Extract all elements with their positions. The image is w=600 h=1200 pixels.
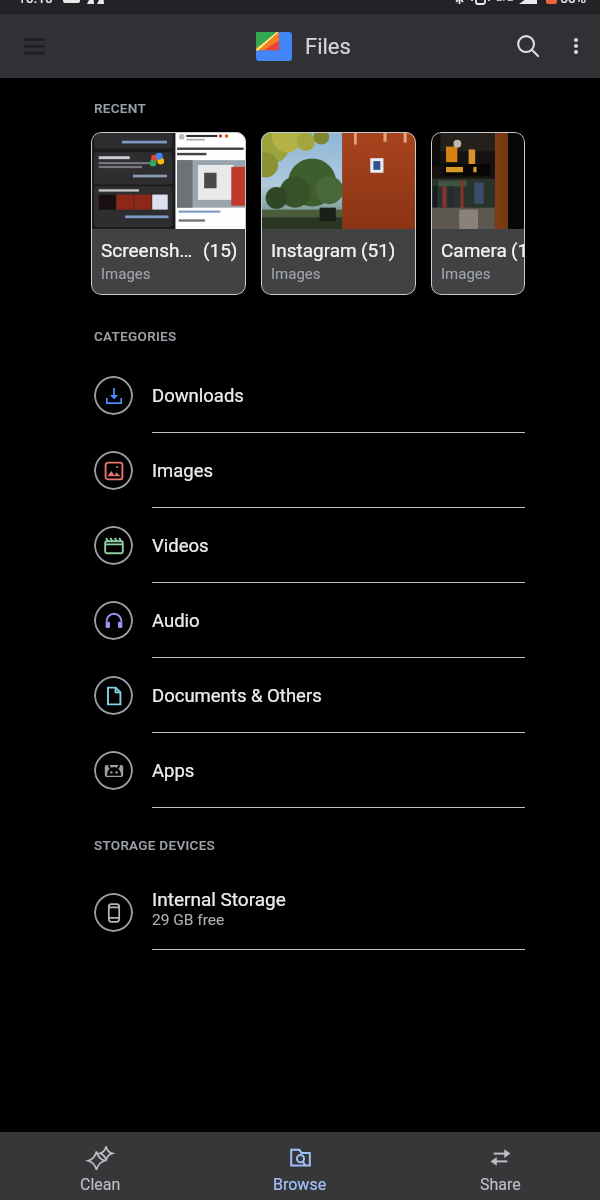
staticText: 10:10 — [18, 0, 53, 4]
staticText: Downloads — [152, 385, 244, 407]
button[interactable]: Instagram — [261, 132, 416, 295]
staticText: Browse — [273, 1175, 327, 1194]
button[interactable]: Screensh… — [91, 132, 246, 295]
staticText: Images — [101, 265, 151, 283]
button[interactable]: Menu — [12, 24, 56, 68]
staticText: Images — [152, 460, 214, 482]
staticText: Videos — [152, 535, 209, 557]
button[interactable]: Apps — [0, 733, 600, 808]
button[interactable]: Camera — [431, 132, 525, 295]
staticText: Instagram — [271, 239, 357, 261]
staticText: Apps — [152, 760, 195, 782]
staticText: Internal Storage — [152, 888, 286, 910]
staticText: CATEGORIES — [94, 328, 177, 344]
staticText: LTE — [496, 0, 514, 4]
staticText: Audio — [152, 610, 200, 632]
staticText: RECENT — [94, 100, 146, 116]
button[interactable]: Internal Storage — [0, 875, 600, 950]
button[interactable]: Downloads — [0, 358, 600, 433]
button[interactable]: More options — [552, 22, 600, 70]
staticText: STORAGE DEVICES — [94, 837, 216, 853]
staticText: 56% — [560, 0, 586, 4]
staticText: Clean — [80, 1175, 121, 1194]
staticText: (51) — [361, 239, 396, 261]
staticText: Documents & Others — [152, 685, 322, 707]
staticText: Share — [480, 1175, 521, 1194]
button[interactable]: Clean — [0, 1139, 200, 1194]
button[interactable]: Videos — [0, 508, 600, 583]
staticText: (15) — [203, 239, 238, 261]
staticText: Camera — [441, 239, 507, 261]
staticText: Images — [271, 265, 321, 283]
button[interactable]: Documents & Others — [0, 658, 600, 733]
button[interactable]: Share — [400, 1139, 600, 1194]
button[interactable]: Browse — [200, 1139, 400, 1194]
staticText: (14) — [511, 239, 525, 261]
button[interactable]: Audio — [0, 583, 600, 658]
button[interactable]: Images — [0, 433, 600, 508]
staticText: Files — [305, 34, 351, 60]
staticText: Images — [441, 265, 491, 283]
button[interactable]: Search — [504, 22, 552, 70]
staticText: 29 GB free — [152, 911, 225, 929]
staticText: Screensh… — [101, 239, 193, 261]
